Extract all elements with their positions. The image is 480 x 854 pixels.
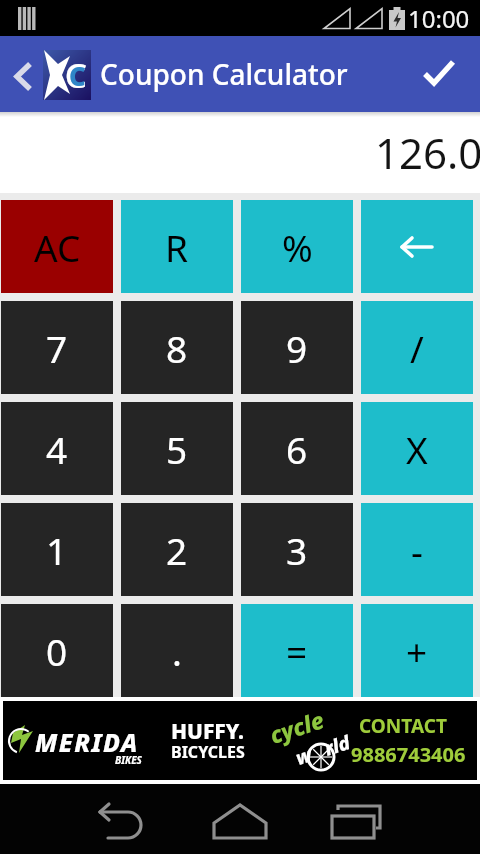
staticText: %	[282, 222, 313, 272]
staticText: 10:00	[408, 2, 470, 35]
button[interactable]: +	[361, 604, 473, 697]
staticText: BIKES	[115, 753, 142, 767]
button[interactable]: 2	[121, 503, 233, 596]
staticText: BICYCLES	[171, 741, 245, 763]
staticText: cycle	[266, 703, 328, 750]
button[interactable]	[90, 797, 150, 841]
button[interactable]: 5	[121, 402, 233, 495]
button[interactable]: 9	[241, 301, 353, 394]
staticText: 6	[286, 424, 308, 474]
button[interactable]: 0	[1, 604, 113, 697]
staticText: HUFFY.	[171, 717, 245, 746]
staticText: C	[69, 58, 86, 93]
staticText: C	[65, 52, 87, 98]
staticText: 3	[286, 525, 308, 575]
staticText: =	[286, 626, 308, 676]
staticText: 7	[46, 323, 68, 373]
button[interactable]: 4	[1, 402, 113, 495]
staticText: R	[165, 222, 189, 272]
staticText: 1	[46, 525, 68, 575]
staticText: -	[411, 525, 423, 575]
staticText: 9886743406	[351, 741, 466, 768]
button[interactable]: /	[361, 301, 473, 394]
staticText: w rld	[292, 729, 354, 771]
button[interactable]: MERIDA	[3, 701, 477, 780]
button[interactable]: X	[361, 402, 473, 495]
button[interactable]: AC	[1, 200, 113, 293]
button[interactable]	[416, 46, 472, 102]
staticText: 126.0	[375, 124, 480, 181]
staticText: CONTACT	[359, 713, 447, 739]
staticText: +	[406, 626, 428, 676]
staticText: MERIDA	[35, 725, 139, 759]
staticText: 2	[166, 525, 188, 575]
button[interactable]: -	[361, 503, 473, 596]
staticText: 4	[46, 424, 68, 474]
button[interactable]: 8	[121, 301, 233, 394]
button[interactable]: 6	[241, 402, 353, 495]
button[interactable]	[208, 797, 272, 841]
button[interactable]: %	[241, 200, 353, 293]
button[interactable]: R	[121, 200, 233, 293]
staticText: AC	[34, 222, 81, 272]
button[interactable]: .	[121, 604, 233, 697]
staticText: 8	[166, 323, 188, 373]
staticText: /	[410, 323, 424, 373]
button[interactable]	[4, 46, 44, 102]
button[interactable]: 1	[1, 503, 113, 596]
button[interactable]: 3	[241, 503, 353, 596]
staticText: .	[172, 626, 182, 676]
staticText: 9	[286, 323, 308, 373]
staticText: 0	[46, 626, 68, 676]
staticText: 5	[166, 424, 188, 474]
staticText: Coupon Calculator	[100, 55, 348, 93]
button[interactable]	[361, 200, 473, 293]
staticText: X	[406, 424, 428, 474]
button[interactable]: 7	[1, 301, 113, 394]
button[interactable]	[324, 797, 388, 841]
button[interactable]: =	[241, 604, 353, 697]
